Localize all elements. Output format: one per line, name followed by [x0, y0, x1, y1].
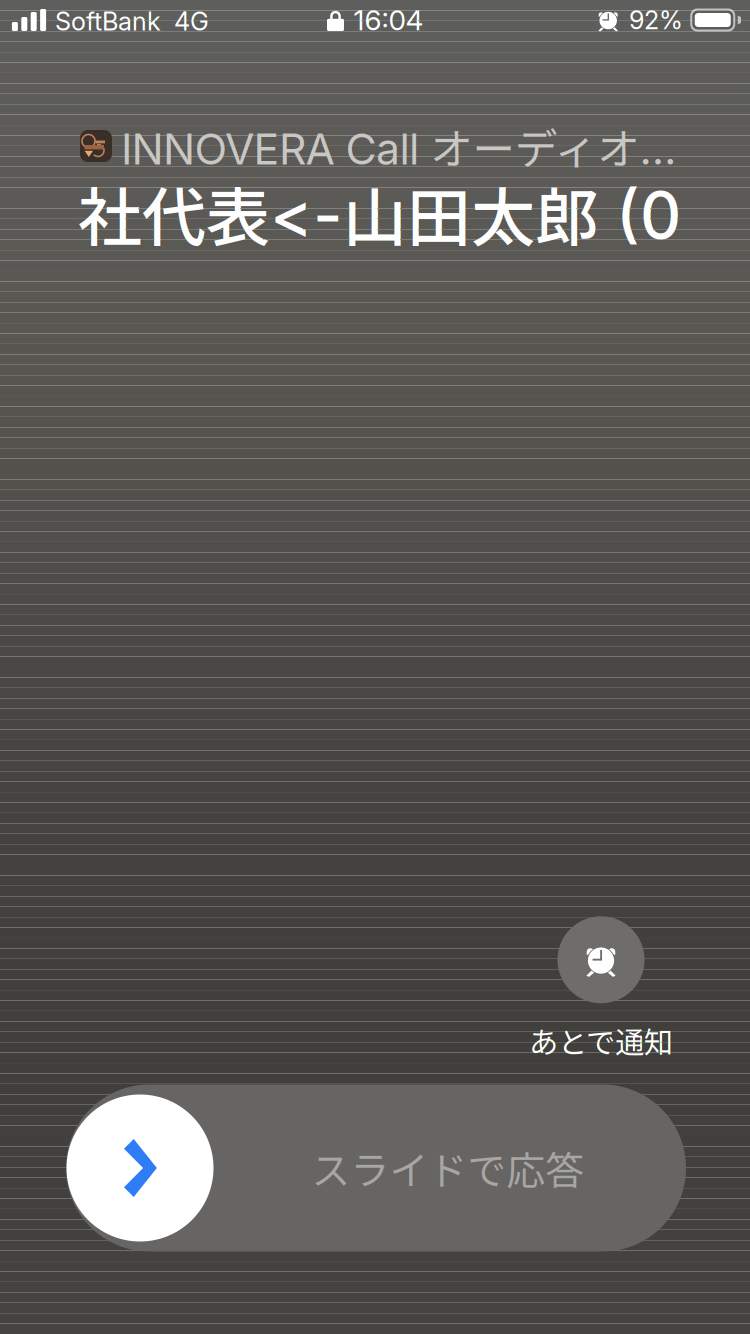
staticText: あとで通知 — [529, 1019, 673, 1062]
button[interactable]: スライドで応答 — [66, 1084, 686, 1251]
staticText: 16:04 — [353, 3, 423, 37]
staticText: SoftBank — [55, 6, 161, 37]
staticText: スライドで応答 — [311, 1140, 584, 1196]
staticText: 92% — [629, 5, 683, 35]
staticText: 4G — [174, 6, 209, 37]
staticText: INNOVERA Call オーディオ… — [121, 115, 676, 177]
staticText: 社代表<-山田太郎 (0 — [78, 168, 681, 258]
button[interactable]: あとで通知 — [471, 923, 731, 1055]
